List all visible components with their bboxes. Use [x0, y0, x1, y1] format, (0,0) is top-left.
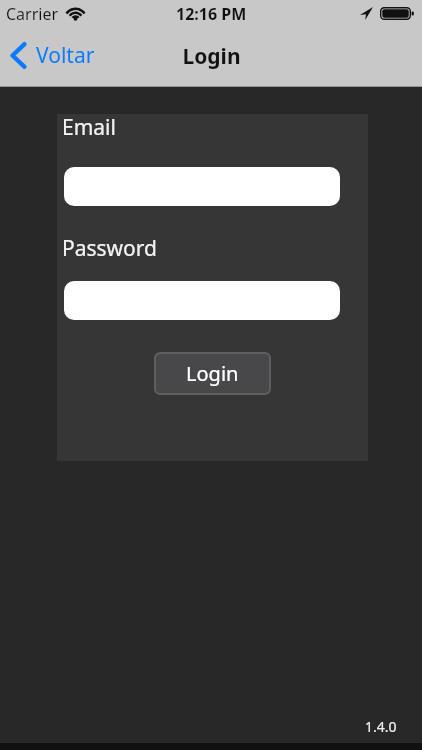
staticText: Login	[182, 42, 241, 71]
button[interactable]: Voltar	[10, 41, 95, 70]
staticText: Carrier	[6, 3, 59, 25]
staticText: 1.4.0	[365, 717, 397, 736]
button[interactable]: Login	[154, 352, 271, 395]
staticText: 12:16 PM	[176, 3, 247, 25]
staticText: Login	[186, 360, 239, 387]
staticText: Voltar	[36, 41, 95, 70]
button[interactable]	[64, 281, 340, 320]
staticText: Email	[62, 113, 116, 142]
staticText: Password	[62, 234, 157, 263]
button[interactable]	[64, 167, 340, 206]
